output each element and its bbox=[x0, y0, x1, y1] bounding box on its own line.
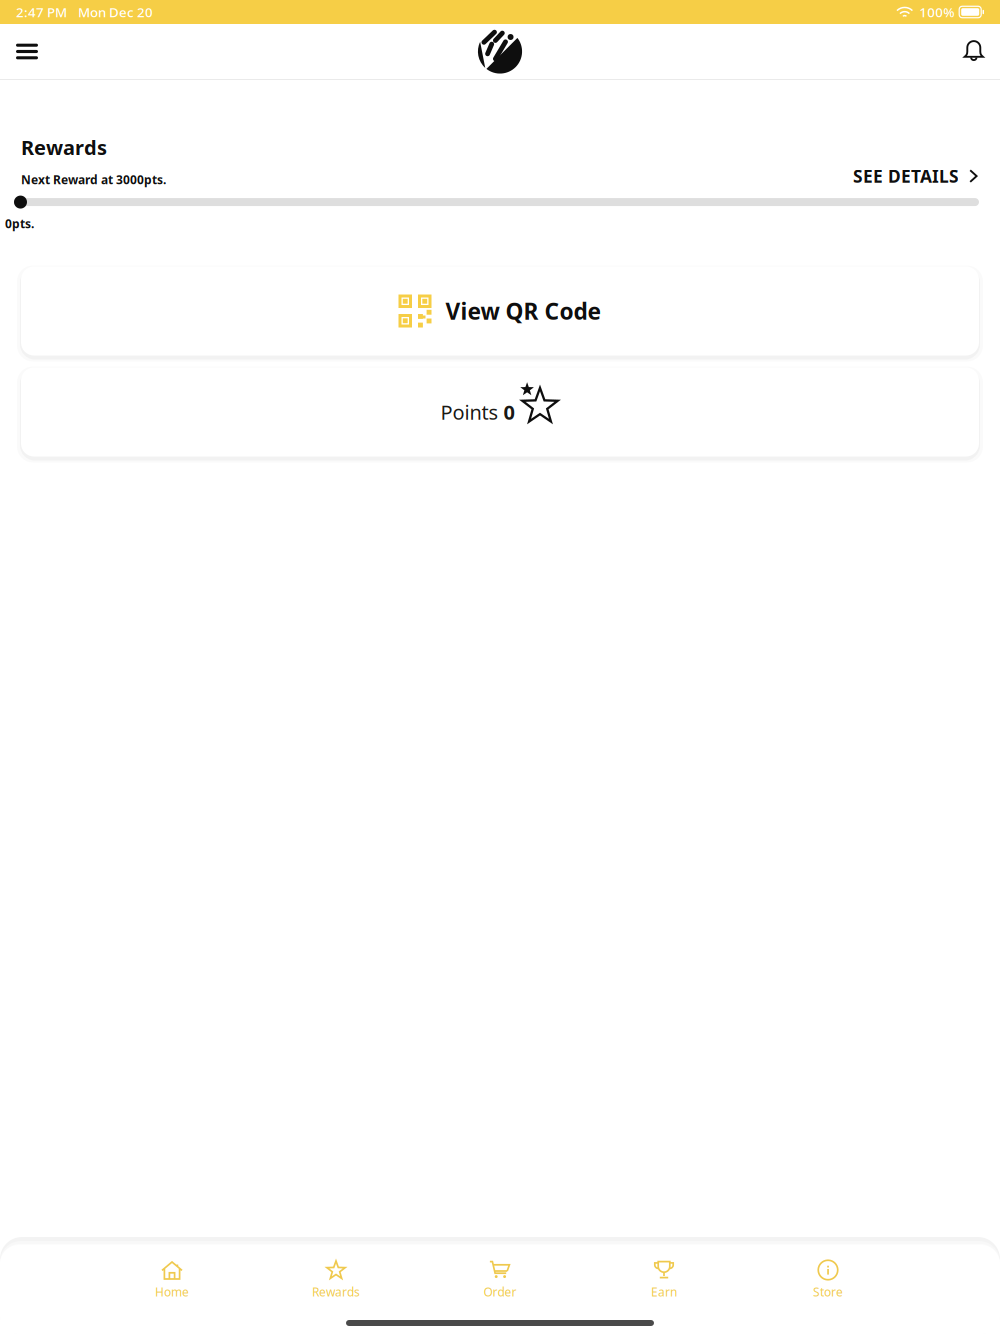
staticText: Rewards bbox=[21, 134, 107, 161]
staticText: 0pts. bbox=[5, 216, 34, 231]
button[interactable]: Order bbox=[418, 1260, 582, 1300]
staticText: Home bbox=[155, 1284, 189, 1300]
staticText: Store bbox=[813, 1284, 843, 1300]
button[interactable]: Store bbox=[746, 1260, 910, 1300]
staticText: SEE DETAILS bbox=[853, 165, 959, 188]
staticText: Order bbox=[483, 1284, 516, 1300]
staticText: Mon Dec 20 bbox=[78, 3, 153, 21]
button[interactable]: Rewards bbox=[254, 1260, 418, 1300]
button[interactable]: SEE DETAILS bbox=[853, 165, 1000, 188]
staticText: Rewards bbox=[312, 1284, 360, 1300]
button[interactable]: View QR Code bbox=[0, 266, 1000, 355]
staticText: Earn bbox=[651, 1284, 677, 1300]
staticText: 100% bbox=[919, 3, 954, 21]
button[interactable]: Menu bbox=[5, 29, 49, 73]
button[interactable]: Points 0 bbox=[0, 367, 1000, 456]
staticText: View QR Code bbox=[445, 296, 601, 326]
button[interactable]: Earn bbox=[582, 1260, 746, 1300]
staticText: Points 0 bbox=[440, 399, 514, 425]
button[interactable]: Home bbox=[477, 28, 523, 74]
staticText: 2:47 PM bbox=[16, 3, 67, 21]
button[interactable]: Home bbox=[90, 1260, 254, 1300]
staticText: Next Reward at 3000pts. bbox=[21, 172, 166, 187]
button[interactable]: Notifications bbox=[951, 29, 995, 73]
